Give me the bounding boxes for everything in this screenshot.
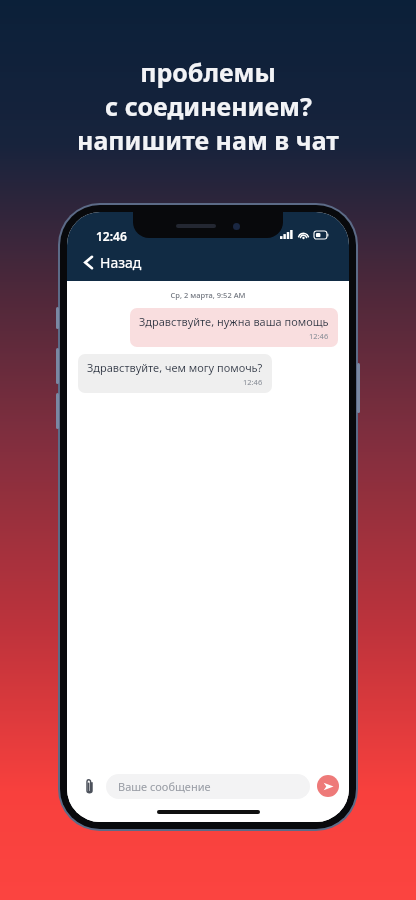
staticText: Ср, 2 марта, 9:52 AM: [67, 290, 349, 300]
staticText: 12:46: [96, 228, 127, 244]
staticText: 12:46: [243, 377, 263, 387]
button[interactable]: Ваше сообщение: [106, 774, 310, 799]
staticText: с соединением?: [105, 89, 312, 123]
staticText: Назад: [100, 253, 142, 272]
staticText: Здравствуйте, чем могу помочь?: [87, 360, 263, 375]
button[interactable]: Здравствуйте, нужна ваша помощь: [130, 308, 338, 347]
button[interactable]: Attach file: [77, 774, 101, 798]
staticText: 12:46: [309, 331, 329, 341]
button[interactable]: Send: [317, 775, 339, 797]
staticText: проблемы: [140, 55, 276, 89]
staticText: Здравствуйте, нужна ваша помощь: [139, 314, 329, 329]
button[interactable]: Здравствуйте, чем могу помочь?: [78, 354, 272, 393]
staticText: Ваше сообщение: [118, 779, 211, 794]
button[interactable]: Назад: [79, 250, 146, 275]
staticText: напишите нам в чат: [77, 123, 339, 157]
